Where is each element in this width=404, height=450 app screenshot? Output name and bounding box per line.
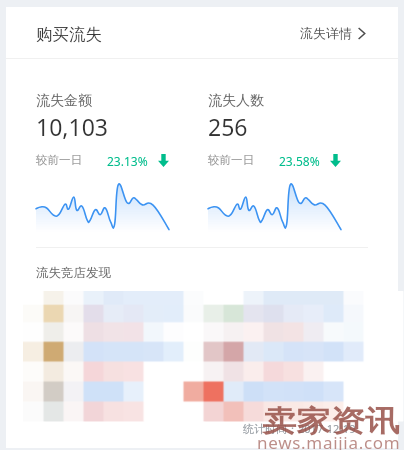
staticText: 23.13% xyxy=(107,153,148,169)
button[interactable]: 流失详情 xyxy=(294,16,372,50)
staticText: 流失详情 xyxy=(300,25,352,41)
staticText: 流失金额 xyxy=(36,92,92,110)
staticText: 购买流失 xyxy=(36,24,102,45)
staticText: 流失竞店发现 xyxy=(36,265,111,281)
staticText: 卖家资讯 xyxy=(262,403,399,440)
staticText: 流失人数 xyxy=(208,92,264,110)
staticText: 统计时间：2017-12-19 xyxy=(243,421,356,436)
staticText: 10,103 xyxy=(36,111,108,142)
staticText: 较前一日 xyxy=(208,153,254,167)
staticText: 23.58% xyxy=(279,153,320,169)
staticText: 较前一日 xyxy=(36,153,82,167)
staticText: 256 xyxy=(208,111,248,142)
staticText: news.maijia.com xyxy=(257,431,401,450)
